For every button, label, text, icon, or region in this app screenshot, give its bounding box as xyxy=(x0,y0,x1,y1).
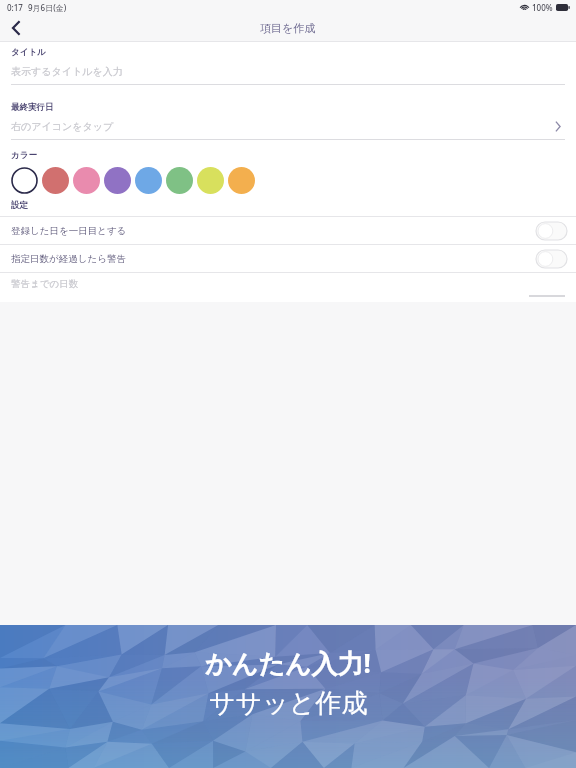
button[interactable]: 指定日数が経過したら警告 xyxy=(0,245,576,272)
button[interactable]: Colour option xyxy=(73,167,100,194)
button[interactable]: White colour, selected xyxy=(11,167,38,194)
staticText: 警告までの日数 xyxy=(11,278,79,290)
staticText: 項目を作成 xyxy=(260,21,316,35)
staticText: 最終実行日 xyxy=(11,102,54,113)
staticText: ササッと作成 xyxy=(209,687,368,720)
button[interactable]: Colour option xyxy=(135,167,162,194)
staticText: 表示するタイトルを入力 xyxy=(11,65,123,78)
button[interactable]: Back xyxy=(0,14,32,42)
button[interactable]: Colour option xyxy=(42,167,69,194)
button[interactable]: Colour option xyxy=(104,167,131,194)
button[interactable]: Colour option xyxy=(166,167,193,194)
button[interactable]: 表示するタイトルを入力 xyxy=(0,63,576,80)
staticText: カラー xyxy=(11,150,37,161)
staticText: タイトル xyxy=(11,47,46,58)
button[interactable]: 警告までの日数 xyxy=(0,273,576,295)
button[interactable]: Colour option xyxy=(228,167,255,194)
button[interactable]: 右のアイコンをタップ xyxy=(0,118,576,135)
staticText: 指定日数が経過したら警告 xyxy=(11,253,126,265)
staticText: 9月6日(金) xyxy=(28,2,67,13)
staticText: かんたん入力! xyxy=(205,645,371,681)
button[interactable]: 登録した日を一日目とする xyxy=(0,217,576,244)
staticText: 100% xyxy=(532,2,553,13)
staticText: 設定 xyxy=(11,200,28,211)
staticText: 登録した日を一日目とする xyxy=(11,225,127,237)
staticText: 0:17 xyxy=(7,2,23,13)
button[interactable]: Colour option xyxy=(197,167,224,194)
staticText: 右のアイコンをタップ xyxy=(11,120,114,133)
